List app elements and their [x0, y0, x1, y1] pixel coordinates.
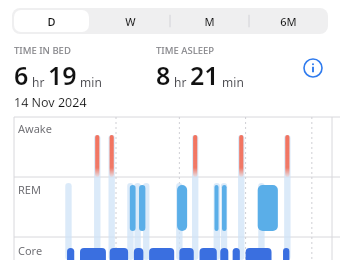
button[interactable]: 6M — [251, 10, 326, 32]
staticText: W — [125, 14, 136, 29]
staticText: Awake — [18, 121, 52, 136]
staticText: 6 — [14, 58, 29, 92]
staticText: 8 — [156, 58, 171, 92]
staticText: M — [204, 14, 215, 29]
button[interactable]: W — [93, 10, 168, 32]
staticText: Core — [18, 243, 43, 258]
button[interactable]: About sleep data — [298, 53, 328, 83]
staticText: min — [77, 74, 102, 90]
staticText: 6M — [280, 14, 297, 29]
staticText: min — [219, 74, 244, 90]
staticText: 14 Nov 2024 — [14, 94, 87, 111]
staticText: hr — [29, 74, 48, 90]
staticText: D — [47, 14, 56, 29]
button[interactable]: M — [172, 10, 247, 32]
staticText: 19 — [48, 58, 77, 92]
staticText: REM — [18, 182, 41, 197]
staticText: 21 — [190, 58, 219, 92]
staticText: hr — [171, 74, 190, 90]
staticText: TIME ASLEEP — [156, 44, 215, 57]
button[interactable]: D — [14, 10, 89, 32]
staticText: TIME IN BED — [14, 44, 71, 57]
